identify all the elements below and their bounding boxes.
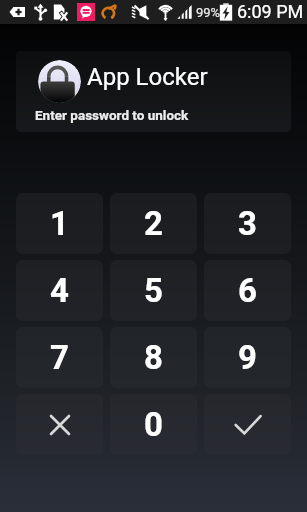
staticText: 7 — [50, 338, 69, 377]
button[interactable]: 1 — [16, 193, 103, 254]
staticText: 3 — [238, 204, 257, 243]
button[interactable]: 8 — [110, 327, 197, 388]
button[interactable]: Clear — [16, 394, 103, 455]
staticText: 99% — [196, 5, 221, 20]
button[interactable]: 5 — [110, 260, 197, 321]
staticText: Enter password to unlock — [35, 107, 189, 123]
button[interactable]: 9 — [204, 327, 291, 388]
staticText: 9 — [238, 338, 257, 377]
staticText: 4 — [50, 271, 69, 310]
button[interactable]: 4 — [16, 260, 103, 321]
other: Clear — [50, 415, 70, 435]
button[interactable]: 3 — [204, 193, 291, 254]
staticText: 1 — [50, 204, 69, 243]
staticText: 8 — [144, 338, 163, 377]
button[interactable]: 7 — [16, 327, 103, 388]
button[interactable]: 0 — [110, 394, 197, 455]
staticText: 6:09 PM — [237, 1, 304, 22]
staticText: 5 — [144, 271, 163, 310]
other: Confirm — [234, 411, 262, 439]
staticText: 0 — [144, 405, 163, 444]
staticText: 2 — [144, 204, 163, 243]
staticText: 6 — [238, 271, 257, 310]
button[interactable]: 6 — [204, 260, 291, 321]
button[interactable]: Confirm — [204, 394, 291, 455]
button[interactable]: 2 — [110, 193, 197, 254]
staticText: App Locker — [87, 63, 208, 91]
